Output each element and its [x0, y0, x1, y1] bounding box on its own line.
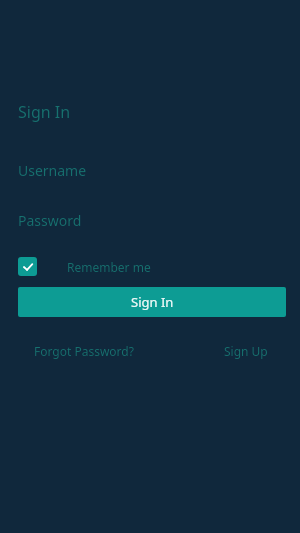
- staticText: Remember me: [67, 259, 151, 275]
- other: Remember me checkbox: [18, 257, 37, 276]
- button[interactable]: Sign In: [18, 287, 286, 317]
- button[interactable]: Forgot Password?: [34, 343, 134, 359]
- staticText: Forgot Password?: [34, 343, 134, 359]
- button[interactable]: Remember me checkbox: [18, 257, 151, 276]
- button[interactable]: Username: [0, 159, 300, 181]
- staticText: Sign In: [131, 293, 174, 311]
- button[interactable]: Sign Up: [224, 343, 268, 359]
- staticText: Sign Up: [224, 343, 268, 359]
- staticText: Password: [18, 211, 82, 230]
- button[interactable]: Password: [0, 209, 300, 231]
- staticText: Username: [18, 161, 87, 180]
- staticText: Sign In: [18, 101, 71, 123]
